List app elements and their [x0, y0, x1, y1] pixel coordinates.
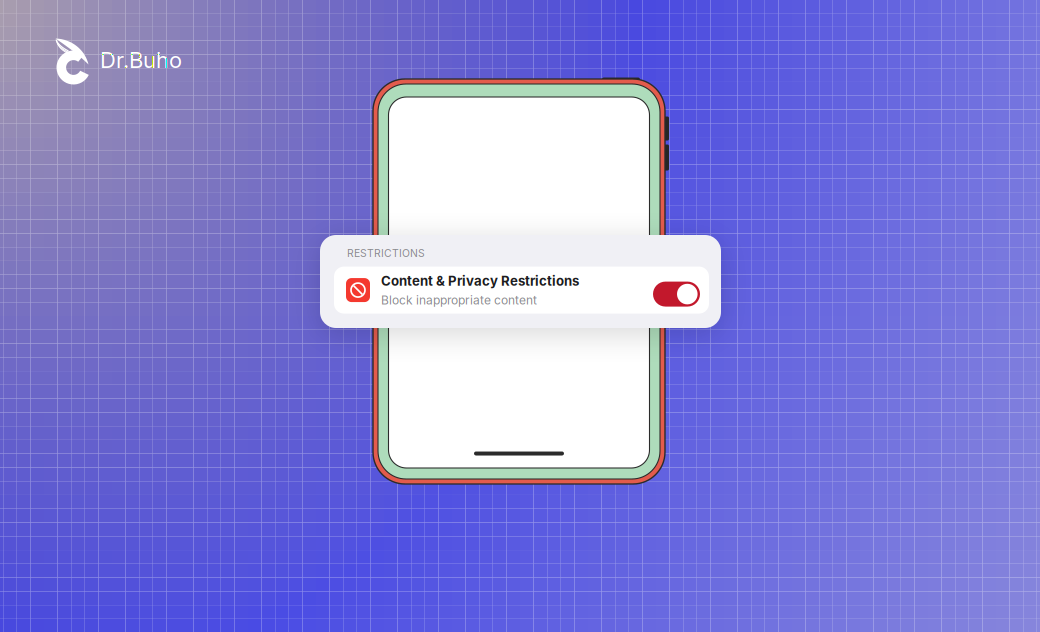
- button[interactable]: Dr.Buho: [53, 36, 182, 84]
- button[interactable]: Content & Privacy Restrictions: [334, 267, 709, 314]
- staticText: Dr.Buho: [100, 47, 182, 73]
- staticText: Block inappropriate content: [381, 293, 537, 307]
- staticText: Content & Privacy Restrictions: [381, 273, 579, 289]
- staticText: RESTRICTIONS: [347, 247, 425, 260]
